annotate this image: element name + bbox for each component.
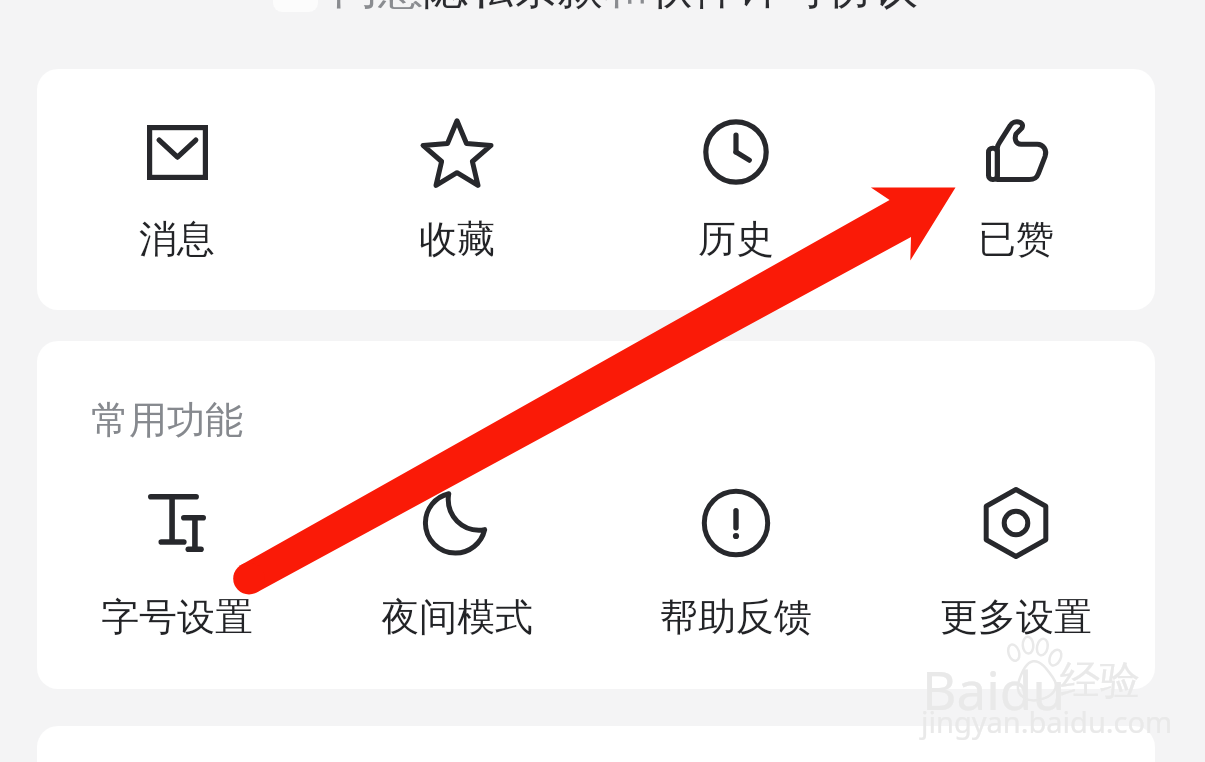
staticText: 字号设置 [101, 593, 253, 641]
staticText: 历史 [698, 215, 774, 263]
staticText: jingyan.baidu.com [921, 702, 1173, 741]
staticText: 夜间模式 [381, 593, 533, 641]
staticText: 帮助反馈 [660, 593, 812, 641]
staticText: 收藏 [419, 215, 495, 263]
button[interactable]: 隐私条款 [423, 0, 603, 17]
button[interactable]: 字号设置 [37, 467, 317, 627]
button[interactable]: 更多设置 [876, 467, 1155, 627]
button[interactable]: 软件许可协议 [648, 0, 918, 17]
button[interactable]: 收藏 [317, 96, 597, 256]
staticText: 隐私条款 [423, 0, 603, 17]
staticText: 常用功能 [91, 396, 243, 444]
staticText: 更多设置 [940, 593, 1092, 641]
staticText: 经验 [1060, 655, 1140, 705]
staticText: 已赞 [978, 215, 1054, 263]
button[interactable]: 历史 [596, 96, 876, 256]
button[interactable]: 消息 [37, 96, 317, 256]
button[interactable]: 帮助反馈 [596, 467, 876, 627]
staticText: 同意 [333, 0, 423, 17]
staticText: 消息 [139, 215, 215, 263]
staticText: Baidu [922, 653, 1066, 725]
button[interactable]: 已赞 [876, 96, 1155, 256]
staticText: 软件许可协议 [648, 0, 918, 17]
staticText: 和 [603, 0, 648, 17]
button[interactable]: 夜间模式 [317, 467, 597, 627]
